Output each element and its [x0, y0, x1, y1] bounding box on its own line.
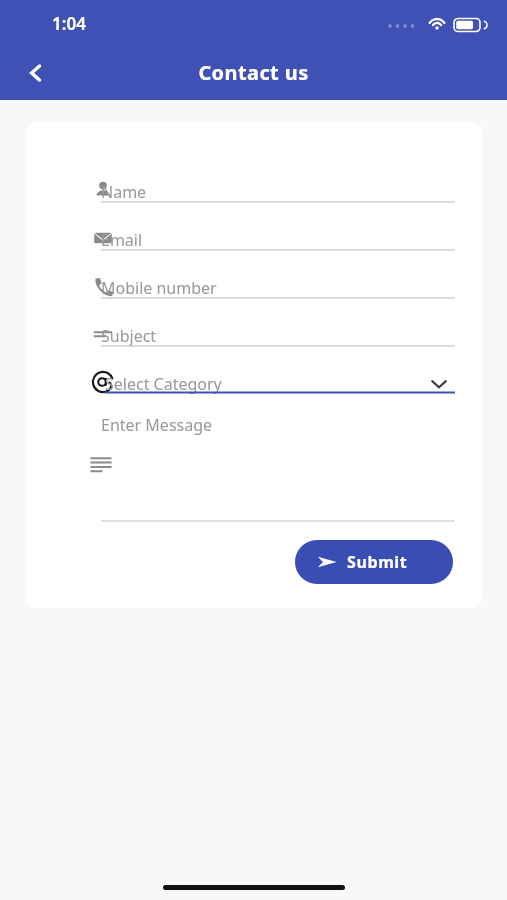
staticText: Email [101, 229, 143, 251]
staticText: Select Category [105, 373, 222, 395]
button[interactable]: Mobile number [25, 264, 482, 312]
staticText: Subject [101, 325, 157, 347]
staticText: Mobile number [101, 277, 217, 299]
staticText: 1:04 [52, 12, 86, 35]
button[interactable]: Enter Message [25, 408, 482, 528]
other: Expand category [430, 375, 448, 393]
button[interactable]: Back [12, 49, 60, 97]
staticText: Submit [347, 551, 408, 573]
staticText: Contact us [0, 59, 507, 86]
staticText: Name [101, 181, 147, 203]
button[interactable]: Submit [295, 540, 453, 584]
staticText: Enter Message [101, 414, 213, 436]
button[interactable]: Name [25, 168, 482, 216]
button[interactable]: Subject [25, 312, 482, 360]
button[interactable]: Email [25, 216, 482, 264]
button[interactable]: Select Category [25, 360, 482, 408]
